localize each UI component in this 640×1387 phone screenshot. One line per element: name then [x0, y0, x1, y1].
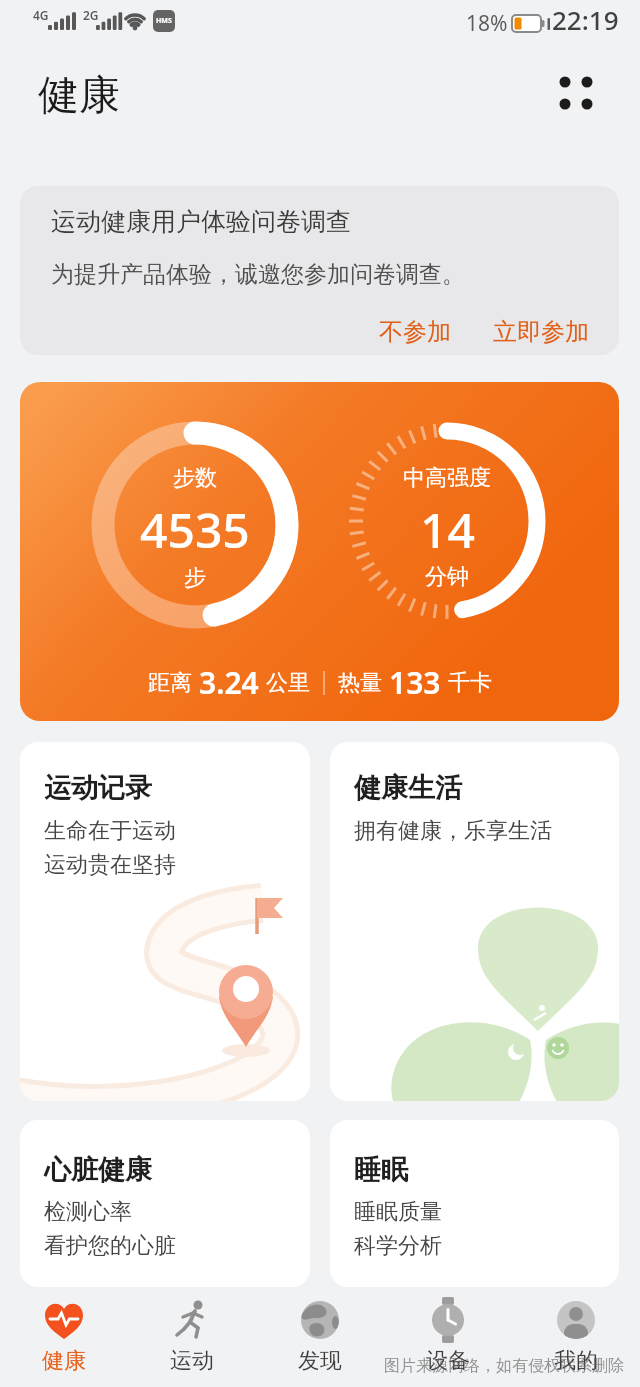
staticText: 健康 — [38, 70, 120, 122]
button[interactable]: 立即参加 — [493, 317, 589, 347]
button[interactable]: 设备 — [384, 1290, 512, 1387]
staticText: 分钟 — [425, 563, 469, 591]
staticText: 2G — [83, 7, 99, 23]
button[interactable]: 睡眠 — [330, 1120, 619, 1287]
staticText: 心脏健康 — [44, 1153, 152, 1187]
staticText: 发现 — [298, 1347, 342, 1375]
staticText: 热量 — [338, 669, 382, 697]
staticText: 14 — [420, 497, 475, 562]
button[interactable]: 步数 — [20, 382, 619, 721]
button[interactable]: 运动 — [128, 1290, 256, 1387]
button[interactable]: 健康 — [0, 1290, 128, 1387]
staticText: 公里 — [266, 669, 310, 697]
staticText: HMS — [156, 16, 172, 26]
staticText: 睡眠质量 — [354, 1198, 442, 1226]
button[interactable]: 运动记录 — [20, 742, 310, 1101]
staticText: 中高强度 — [403, 464, 491, 492]
button[interactable]: 不参加 — [379, 317, 451, 347]
staticText: 拥有健康，乐享生活 — [354, 817, 552, 845]
staticText: 图片来源网络，如有侵权联系删除 — [384, 1356, 624, 1376]
staticText: 22:19 — [552, 2, 619, 37]
staticText: 运动记录 — [44, 771, 152, 805]
staticText: 4G — [33, 7, 49, 23]
staticText: 健康 — [42, 1347, 86, 1375]
button[interactable]: 心脏健康 — [20, 1120, 310, 1287]
staticText: 健康生活 — [354, 771, 462, 805]
button[interactable]: 运动健康用户体验问卷调查 — [20, 186, 619, 355]
staticText: 3.24 — [199, 662, 259, 703]
staticText: 设备 — [426, 1347, 470, 1375]
button[interactable] — [551, 68, 601, 118]
staticText: 不参加 — [379, 317, 451, 347]
staticText: 18% — [466, 9, 508, 38]
staticText: 运动 — [170, 1347, 214, 1375]
staticText: 步 — [184, 564, 206, 592]
staticText: 运动健康用户体验问卷调查 — [51, 206, 351, 237]
staticText: 为提升产品体验，诚邀您参加问卷调查。 — [51, 260, 465, 289]
button[interactable]: 发现 — [256, 1290, 384, 1387]
staticText: 检测心率 — [44, 1198, 132, 1226]
staticText: 立即参加 — [493, 317, 589, 347]
staticText: 我的 — [554, 1347, 598, 1375]
staticText: 距离 — [148, 669, 192, 697]
staticText: 运动贵在坚持 — [44, 851, 176, 879]
button[interactable]: 我的 — [512, 1290, 640, 1387]
staticText: 生命在于运动 — [44, 817, 176, 845]
staticText: 科学分析 — [354, 1232, 442, 1260]
staticText: 步数 — [173, 464, 217, 492]
staticText: 看护您的心脏 — [44, 1232, 176, 1260]
staticText: 睡眠 — [354, 1153, 408, 1187]
staticText: 千卡 — [448, 669, 492, 697]
button[interactable]: 健康生活 — [330, 742, 619, 1101]
staticText: 133 — [389, 662, 441, 703]
staticText: 4535 — [140, 497, 250, 562]
